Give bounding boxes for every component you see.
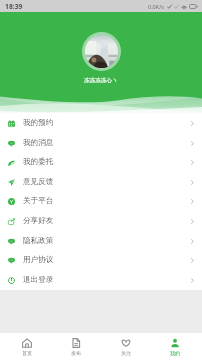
- staticText: 意见反馈: [23, 177, 54, 187]
- button[interactable]: 我的预约: [0, 113, 202, 133]
- button[interactable]: 意见反馈: [0, 172, 202, 192]
- staticText: 关于平台: [23, 196, 54, 206]
- staticText: 退出登录: [23, 275, 54, 285]
- staticText: 发布: [71, 350, 81, 356]
- button[interactable]: 隐私政策: [0, 231, 202, 251]
- button[interactable]: Profile photo: [85, 35, 118, 68]
- button[interactable]: 关注: [104, 333, 148, 360]
- button[interactable]: 关于平台: [0, 191, 202, 211]
- button[interactable]: 用户协议: [0, 250, 202, 270]
- button[interactable]: 首页: [5, 333, 49, 360]
- button[interactable]: 发布: [54, 333, 98, 360]
- staticText: 分享好友: [23, 216, 54, 226]
- staticText: 我的预约: [23, 118, 54, 128]
- button[interactable]: 我的委托: [0, 152, 202, 172]
- button[interactable]: 我的消息: [0, 133, 202, 153]
- staticText: 用户协议: [23, 255, 54, 265]
- button[interactable]: 我的: [153, 333, 197, 360]
- staticText: 首页: [22, 350, 32, 356]
- staticText: 我的委托: [23, 157, 54, 167]
- staticText: 0.0K/s: [148, 3, 164, 10]
- staticText: 18:39: [5, 2, 23, 11]
- button[interactable]: 退出登录: [0, 270, 202, 290]
- button[interactable]: 分享好友: [0, 211, 202, 231]
- staticText: 关注: [121, 350, 131, 356]
- staticText: 隐私政策: [23, 236, 54, 246]
- staticText: 我的消息: [23, 138, 54, 148]
- staticText: 我的: [170, 350, 180, 356]
- staticText: 冻冻冻冻心ヽ: [84, 77, 118, 84]
